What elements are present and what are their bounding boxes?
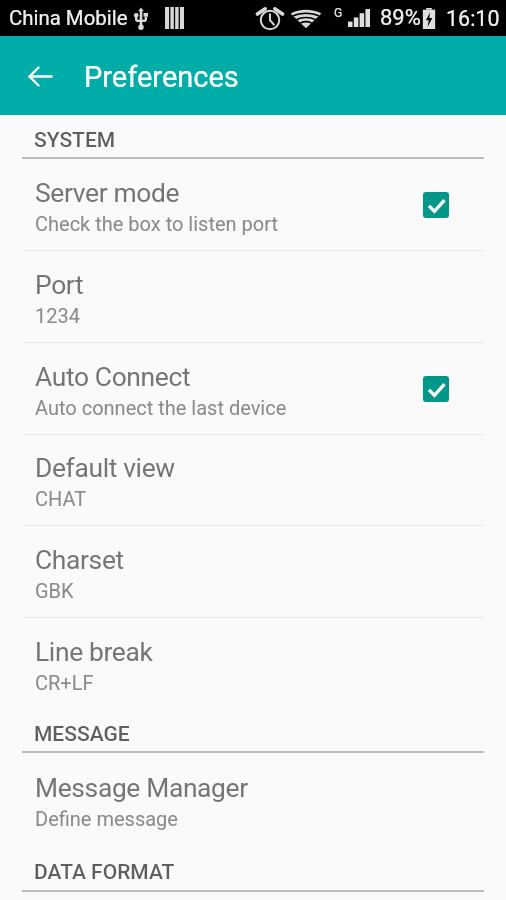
staticText: 1234 [35, 304, 80, 327]
staticText: China Mobile [9, 6, 128, 30]
staticText: Define message [35, 807, 178, 830]
staticText: Message Manager [35, 773, 248, 804]
staticText: MESSAGE [34, 722, 130, 747]
staticText: G [334, 6, 343, 20]
staticText: Server mode [35, 178, 180, 209]
button[interactable]: Navigate up [16, 52, 64, 100]
staticText: Port [35, 270, 84, 301]
button[interactable]: Message Manager [0, 753, 506, 847]
staticText: SYSTEM [34, 128, 116, 153]
button[interactable]: Server mode [0, 159, 506, 251]
staticText: 89% [380, 5, 421, 31]
button[interactable]: Line break [0, 618, 506, 710]
staticText: Line break [35, 637, 153, 668]
staticText: Charset [35, 545, 124, 576]
staticText: Preferences [84, 60, 239, 94]
staticText: CR+LF [35, 671, 94, 694]
button[interactable]: Auto Connect [0, 343, 506, 435]
button[interactable]: Port [0, 251, 506, 343]
staticText: Default view [35, 453, 175, 484]
button[interactable]: Default view [0, 435, 506, 526]
staticText: Auto Connect [35, 362, 191, 393]
button[interactable]: Charset [0, 526, 506, 618]
staticText: Auto connect the last device [35, 396, 287, 419]
staticText: 16:10 [446, 6, 500, 31]
staticText: GBK [35, 579, 74, 602]
staticText: Check the box to listen port [35, 212, 279, 235]
staticText: DATA FORMAT [34, 860, 175, 885]
staticText: CHAT [35, 487, 87, 510]
